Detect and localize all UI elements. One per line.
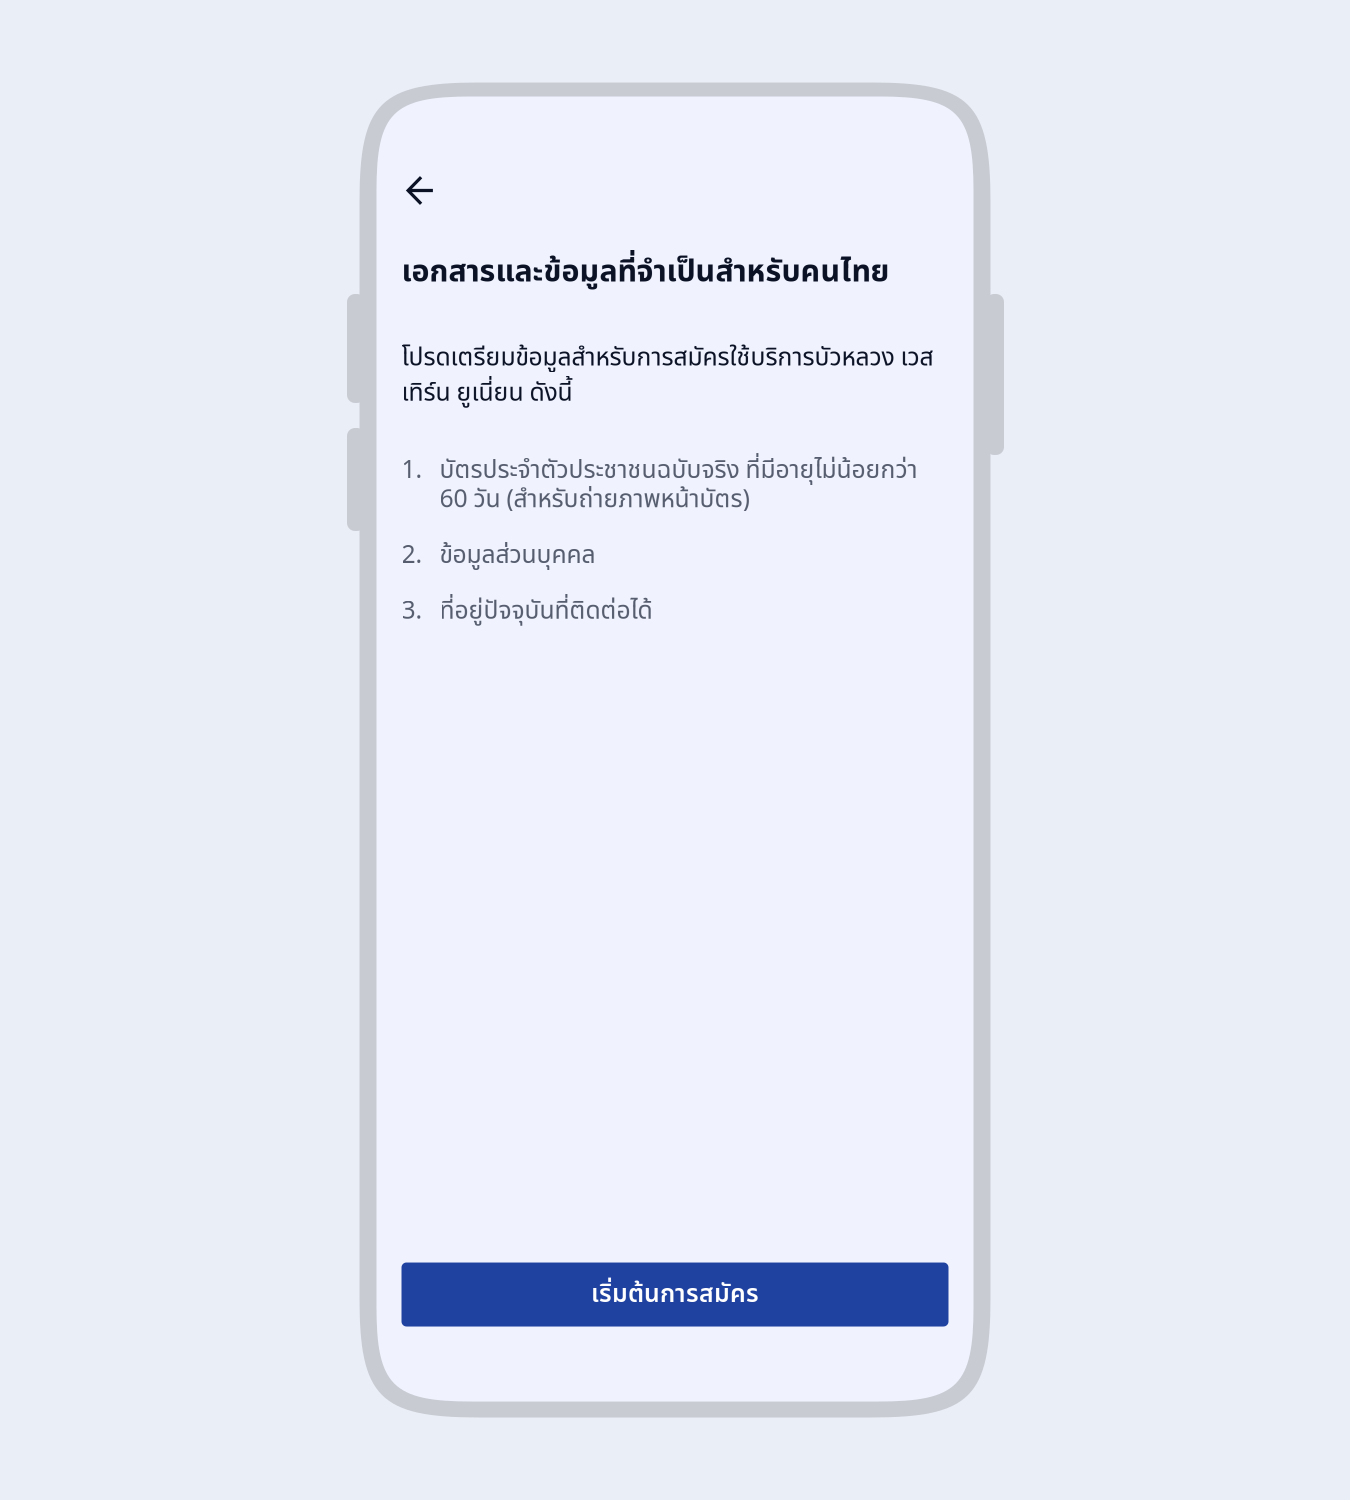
staticText: บัตรประจำตัวประชาชนฉบับจริง ที่มีอายุไม่… xyxy=(439,452,917,518)
button[interactable]: เริ่มต้นการสมัคร xyxy=(401,1262,948,1326)
staticText: 3. xyxy=(401,593,422,630)
staticText: ข้อมูลส่วนบุคคล xyxy=(439,537,595,574)
staticText: 1. xyxy=(401,452,422,489)
staticText: 2. xyxy=(401,537,422,574)
button[interactable]: Back xyxy=(394,164,446,216)
staticText: เอกสารและข้อมูลที่จำเป็นสำหรับคนไทย xyxy=(401,249,889,295)
staticText: เริ่มต้นการสมัคร xyxy=(591,1276,759,1313)
staticText: โปรดเตรียมข้อมูลสำหรับการสมัครใช้บริการบ… xyxy=(401,339,933,412)
staticText: ที่อยู่ปัจจุบันที่ติดต่อได้ xyxy=(439,593,652,630)
